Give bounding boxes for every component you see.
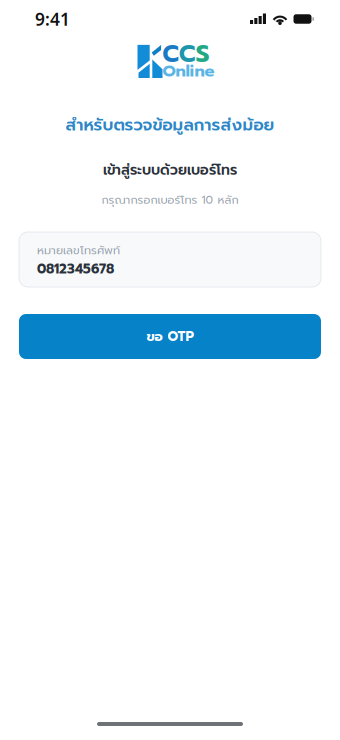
staticText: 9:41 <box>35 7 70 30</box>
staticText: 0812345678 <box>37 259 114 279</box>
button[interactable]: หมายเลขโทรศัพท์ <box>19 232 321 287</box>
staticText: S <box>196 36 210 72</box>
button[interactable]: ขอ OTP <box>19 314 321 359</box>
staticText: เข้าสู่ระบบด้วยเบอร์โทร <box>103 159 237 181</box>
staticText: กรุณากรอกเบอร์โทร 10 หลัก <box>101 191 238 208</box>
staticText: หมายเลขโทรศัพท์ <box>37 242 120 259</box>
staticText: ขอ OTP <box>146 326 193 347</box>
staticText: C <box>162 36 178 72</box>
staticText: สำหรับตรวจข้อมูลการส่งม้อย <box>65 112 274 137</box>
staticText: Online <box>162 58 214 84</box>
staticText: C <box>179 36 195 72</box>
